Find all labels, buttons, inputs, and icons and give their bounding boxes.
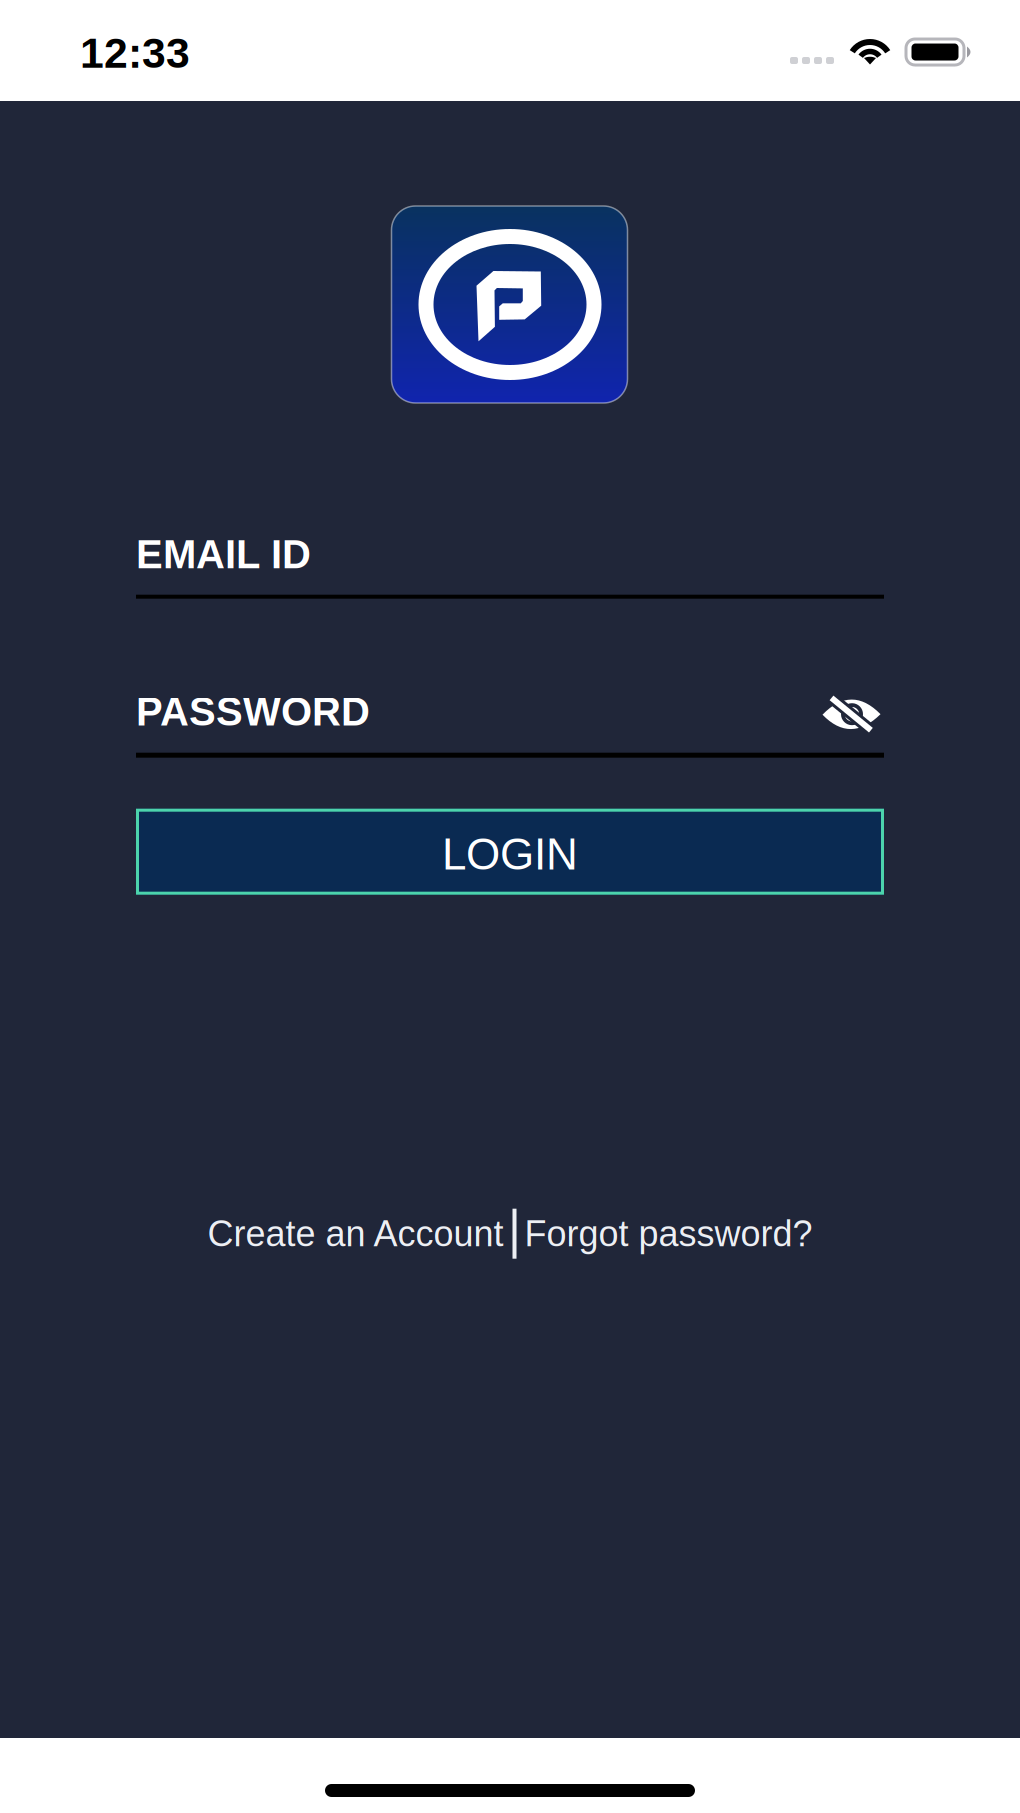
button[interactable]: Show password [822,688,884,736]
staticText: EMAIL ID [136,532,311,577]
staticText: PASSWORD [136,689,370,734]
staticText: Create an Account [207,1214,503,1254]
button[interactable]: Forgot password? [516,1214,812,1254]
staticText: 12:33 [80,29,190,77]
button[interactable]: Create an Account [207,1214,512,1254]
button[interactable]: LOGIN [136,809,884,895]
staticText: LOGIN [442,830,578,879]
staticText: Forgot password? [524,1214,812,1254]
